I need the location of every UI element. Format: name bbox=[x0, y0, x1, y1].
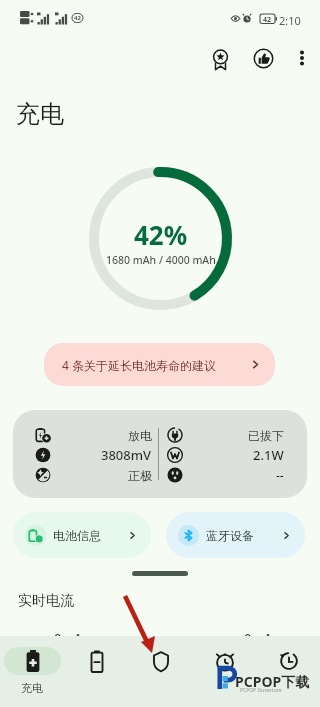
button[interactable]: Rewards bbox=[202, 40, 238, 76]
staticText: 1680 mAh / 4000 mAh bbox=[106, 253, 216, 267]
button[interactable]: 4 条关于延长电池寿命的建议 bbox=[44, 343, 275, 386]
button[interactable]: Alarm bbox=[192, 636, 256, 707]
button[interactable]: Battery bbox=[64, 636, 128, 707]
staticText: 0mA bbox=[244, 629, 273, 647]
staticText: 正极 bbox=[128, 468, 152, 483]
staticText: -- bbox=[276, 467, 284, 483]
button[interactable]: More options bbox=[284, 40, 320, 76]
staticText: 42 bbox=[74, 14, 81, 22]
staticText: 2.1W bbox=[253, 446, 284, 464]
staticText: PCPOP下载 bbox=[235, 672, 310, 691]
staticText: 蓝牙设备 bbox=[206, 528, 254, 543]
staticText: 放电 bbox=[128, 428, 152, 443]
staticText: 充电 bbox=[16, 99, 64, 129]
staticText: 3808mV bbox=[101, 446, 152, 464]
staticText: 实时电流 bbox=[18, 592, 74, 610]
staticText: 电池信息 bbox=[53, 528, 101, 543]
staticText: 4 条关于延长电池寿命的建议 bbox=[62, 357, 216, 373]
button[interactable]: 电池信息 bbox=[13, 512, 151, 558]
button[interactable]: History bbox=[256, 636, 320, 707]
button[interactable]: Protect bbox=[128, 636, 192, 707]
staticText: 0mA bbox=[54, 629, 83, 647]
button[interactable]: Charging bbox=[0, 636, 64, 707]
button[interactable]: Feedback bbox=[245, 40, 281, 76]
staticText: PCPOP Ouverture bbox=[240, 687, 282, 694]
staticText: 充电 bbox=[21, 681, 43, 695]
staticText: 42 bbox=[263, 15, 272, 25]
staticText: 2:10 bbox=[279, 13, 301, 28]
button[interactable]: 蓝牙设备 bbox=[166, 512, 305, 558]
staticText: 42% bbox=[134, 217, 188, 252]
staticText: 已拔下 bbox=[248, 428, 284, 443]
